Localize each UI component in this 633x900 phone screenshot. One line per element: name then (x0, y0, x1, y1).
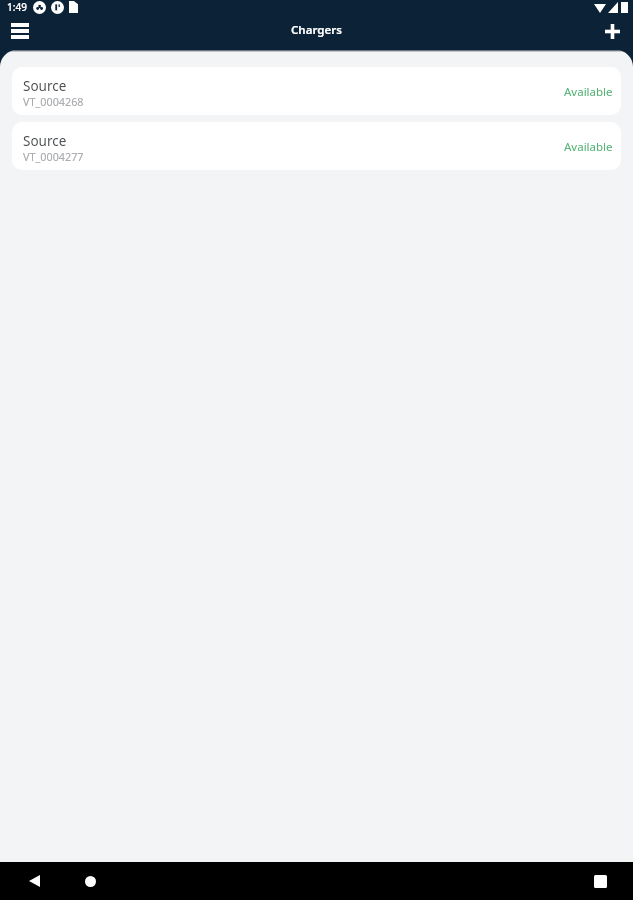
button[interactable]: Back (20, 867, 48, 895)
button[interactable]: Source (12, 67, 621, 115)
staticText: Source (23, 77, 67, 95)
staticText: 1:49 (7, 0, 27, 14)
staticText: Chargers (291, 22, 342, 38)
button[interactable]: Source (12, 122, 621, 170)
button[interactable]: Menu (4, 15, 36, 47)
staticText: Available (564, 84, 613, 100)
button[interactable]: Add charger (596, 15, 628, 47)
staticText: Available (564, 139, 613, 155)
staticText: VT_0004268 (23, 94, 84, 109)
staticText: VT_0004277 (23, 149, 84, 164)
button[interactable]: Recent apps (586, 867, 614, 895)
button[interactable]: Home (76, 867, 104, 895)
staticText: Source (23, 132, 67, 150)
